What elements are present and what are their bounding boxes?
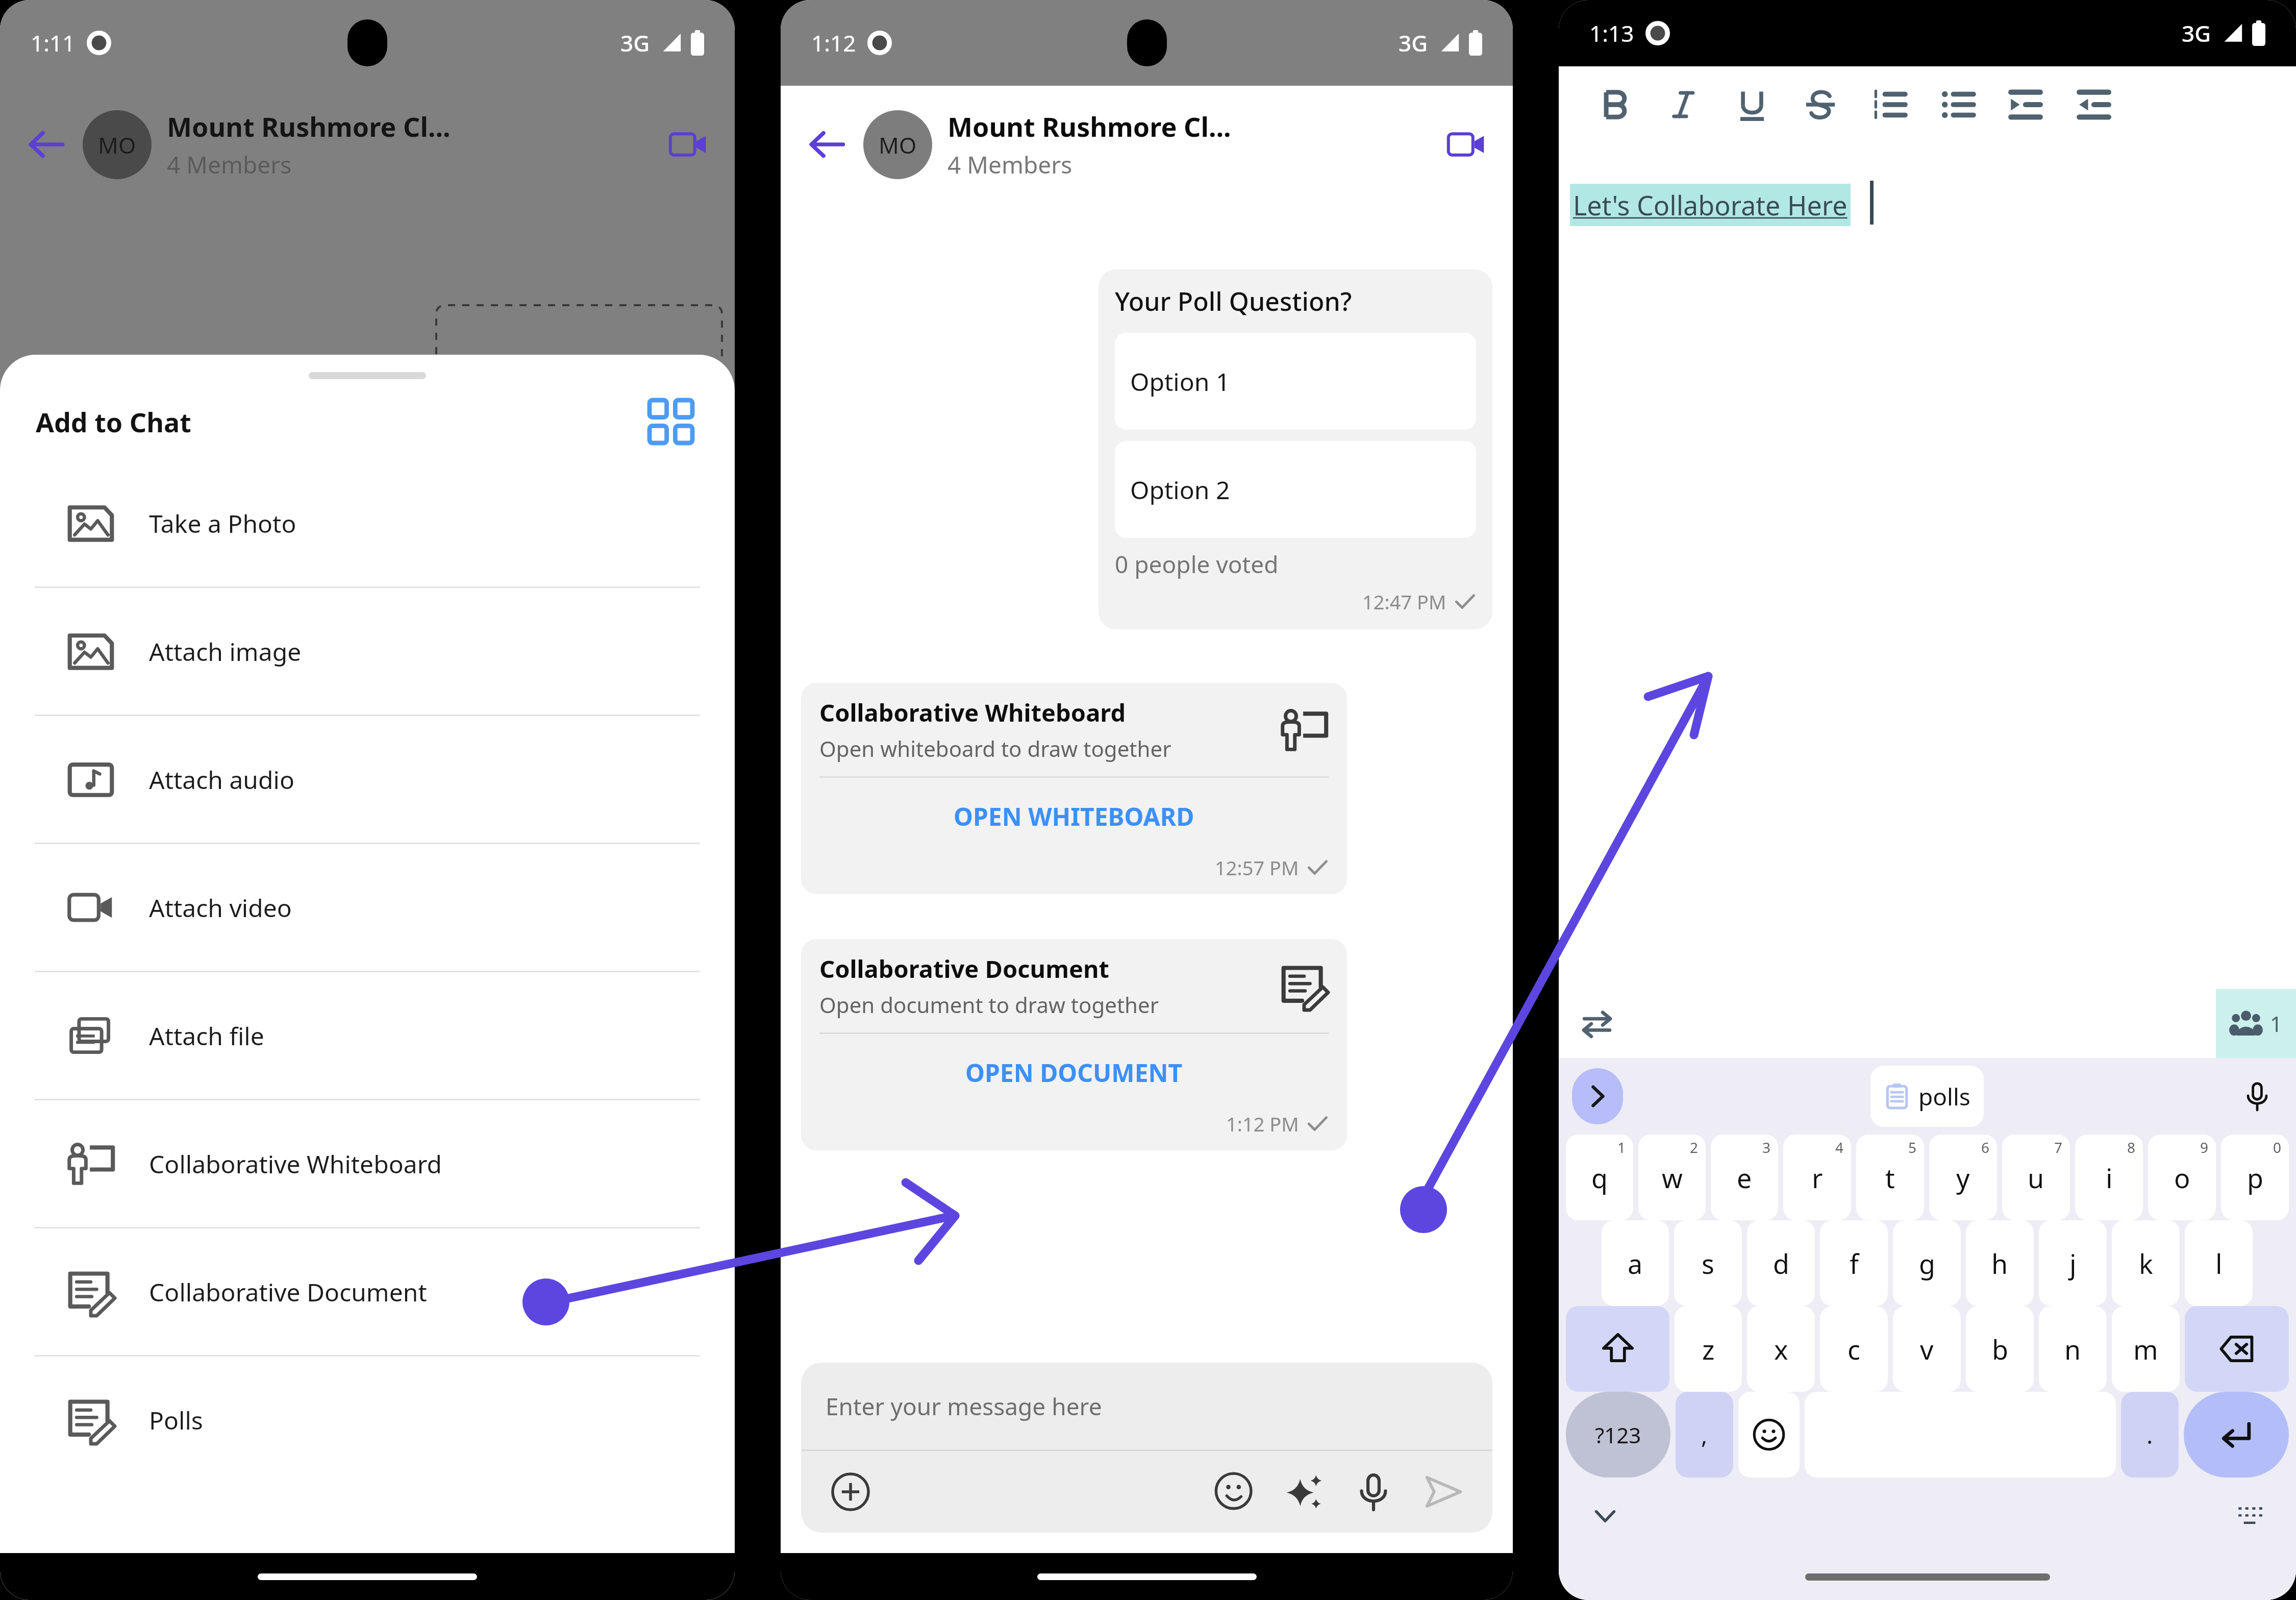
- button[interactable]: Back: [18, 116, 74, 173]
- button[interactable]: b: [1966, 1306, 2034, 1392]
- staticText: w: [1662, 1160, 1683, 1196]
- staticText: polls: [1918, 1080, 1970, 1113]
- button[interactable]: More suggestions: [1572, 1068, 1623, 1124]
- staticText: Collaborative Whiteboard: [149, 1147, 442, 1180]
- button[interactable]: Back: [799, 116, 855, 173]
- button[interactable]: v: [1893, 1306, 1961, 1392]
- button[interactable]: Outdent: [2072, 83, 2116, 127]
- button[interactable]: Voice input: [2232, 1071, 2283, 1122]
- button[interactable]: .: [2121, 1392, 2179, 1478]
- button[interactable]: 5: [1856, 1135, 1924, 1220]
- button[interactable]: 4: [1783, 1135, 1851, 1220]
- button[interactable]: Indent: [2004, 83, 2048, 127]
- button[interactable]: Stickers: [1207, 1464, 1263, 1520]
- button[interactable]: s: [1674, 1220, 1742, 1306]
- button[interactable]: 3: [1711, 1135, 1778, 1220]
- button[interactable]: Collaborative Document: [0, 1228, 735, 1355]
- staticText: k: [2139, 1245, 2153, 1282]
- button[interactable]: a: [1602, 1220, 1669, 1306]
- button[interactable]: 8: [2075, 1135, 2143, 1220]
- staticText: Add to Chat: [36, 404, 191, 440]
- button[interactable]: Option 1: [1115, 333, 1476, 430]
- button[interactable]: g: [1893, 1220, 1961, 1306]
- button[interactable]: f: [1820, 1220, 1888, 1306]
- button[interactable]: Hide keyboard: [1582, 1493, 1628, 1539]
- staticText: Attach image: [149, 635, 302, 668]
- button[interactable]: Attach audio: [0, 716, 735, 843]
- staticText: p: [2247, 1160, 2263, 1196]
- staticText: o: [2174, 1160, 2190, 1196]
- staticText: Option 2: [1130, 473, 1230, 506]
- button[interactable]: Italic: [1662, 83, 1706, 127]
- staticText: 12:47 PM: [1362, 588, 1446, 615]
- staticText: y: [1956, 1160, 1970, 1196]
- staticText: 5: [1908, 1138, 1917, 1157]
- button[interactable]: Add attachment: [822, 1464, 879, 1520]
- button[interactable]: k: [2112, 1220, 2180, 1306]
- button[interactable]: Polls: [0, 1357, 735, 1483]
- button[interactable]: Collaborative Whiteboard: [0, 1100, 735, 1227]
- button[interactable]: Strikethrough: [1799, 83, 1842, 127]
- button[interactable]: Sync: [1574, 1001, 1620, 1047]
- button[interactable]: Shift: [1566, 1306, 1669, 1392]
- button[interactable]: Video call: [660, 116, 716, 173]
- button[interactable]: MO: [863, 110, 932, 179]
- button[interactable]: z: [1675, 1306, 1742, 1392]
- button[interactable]: Take a Photo: [0, 460, 735, 586]
- button[interactable]: 9: [2148, 1135, 2216, 1220]
- button[interactable]: Send: [1415, 1464, 1471, 1520]
- button[interactable]: Video call: [1438, 116, 1494, 173]
- button[interactable]: 6: [1929, 1135, 1997, 1220]
- staticText: 4: [1835, 1138, 1844, 1157]
- button[interactable]: Bullet list: [1935, 83, 1979, 127]
- button[interactable]: MO: [83, 110, 152, 179]
- button[interactable]: OPEN WHITEBOARD: [819, 778, 1329, 854]
- button[interactable]: h: [1966, 1220, 2034, 1306]
- staticText: n: [2064, 1331, 2081, 1367]
- button[interactable]: Your Poll Question?: [1099, 269, 1492, 629]
- button[interactable]: 2: [1638, 1135, 1706, 1220]
- button[interactable]: Grid view: [643, 393, 699, 450]
- button[interactable]: c: [1820, 1306, 1888, 1392]
- button[interactable]: Attach image: [0, 588, 735, 715]
- button[interactable]: OPEN DOCUMENT: [819, 1034, 1329, 1111]
- button[interactable]: n: [2039, 1306, 2107, 1392]
- button[interactable]: 1: [1566, 1135, 1633, 1220]
- button[interactable]: Option 2: [1115, 441, 1476, 538]
- staticText: 1: [1617, 1138, 1626, 1157]
- button[interactable]: Enter: [2184, 1392, 2289, 1478]
- button[interactable]: 1: [2216, 989, 2296, 1058]
- button[interactable]: Record voice: [1345, 1464, 1402, 1520]
- button[interactable]: ?123: [1566, 1392, 1670, 1478]
- button[interactable]: Backspace: [2185, 1306, 2289, 1392]
- staticText: Collaborative Whiteboard: [819, 696, 1126, 729]
- staticText: Take a Photo: [149, 507, 296, 540]
- button[interactable]: polls: [1870, 1066, 1984, 1127]
- button[interactable]: d: [1747, 1220, 1815, 1306]
- staticText: MO: [879, 130, 917, 160]
- button[interactable]: j: [2039, 1220, 2107, 1306]
- button[interactable]: x: [1747, 1306, 1815, 1392]
- staticText: 7: [2054, 1138, 2063, 1157]
- button[interactable]: Attach file: [0, 972, 735, 1099]
- button[interactable]: Bold: [1593, 83, 1637, 127]
- staticText: 4 Members: [167, 149, 292, 181]
- staticText: 3G: [620, 28, 650, 58]
- button[interactable]: Attach video: [0, 844, 735, 971]
- button[interactable]: AI assist: [1276, 1464, 1332, 1520]
- button[interactable]: l: [2185, 1220, 2253, 1306]
- button[interactable]: ,: [1676, 1392, 1733, 1478]
- staticText: 2: [1690, 1138, 1699, 1157]
- button[interactable]: 0: [2221, 1135, 2289, 1220]
- button[interactable]: Numbered list: [1867, 83, 1911, 127]
- button[interactable]: Switch keyboard: [2227, 1493, 2273, 1539]
- button[interactable]: Enter your message here: [801, 1363, 1492, 1449]
- button[interactable]: 7: [2002, 1135, 2070, 1220]
- button[interactable]: Underline: [1730, 83, 1774, 127]
- staticText: 3: [1762, 1138, 1771, 1157]
- staticText: Let's Collaborate Here: [1573, 187, 1848, 223]
- staticText: 0: [2273, 1138, 2282, 1157]
- button[interactable]: Emoji: [1738, 1392, 1800, 1478]
- button[interactable]: m: [2112, 1306, 2180, 1392]
